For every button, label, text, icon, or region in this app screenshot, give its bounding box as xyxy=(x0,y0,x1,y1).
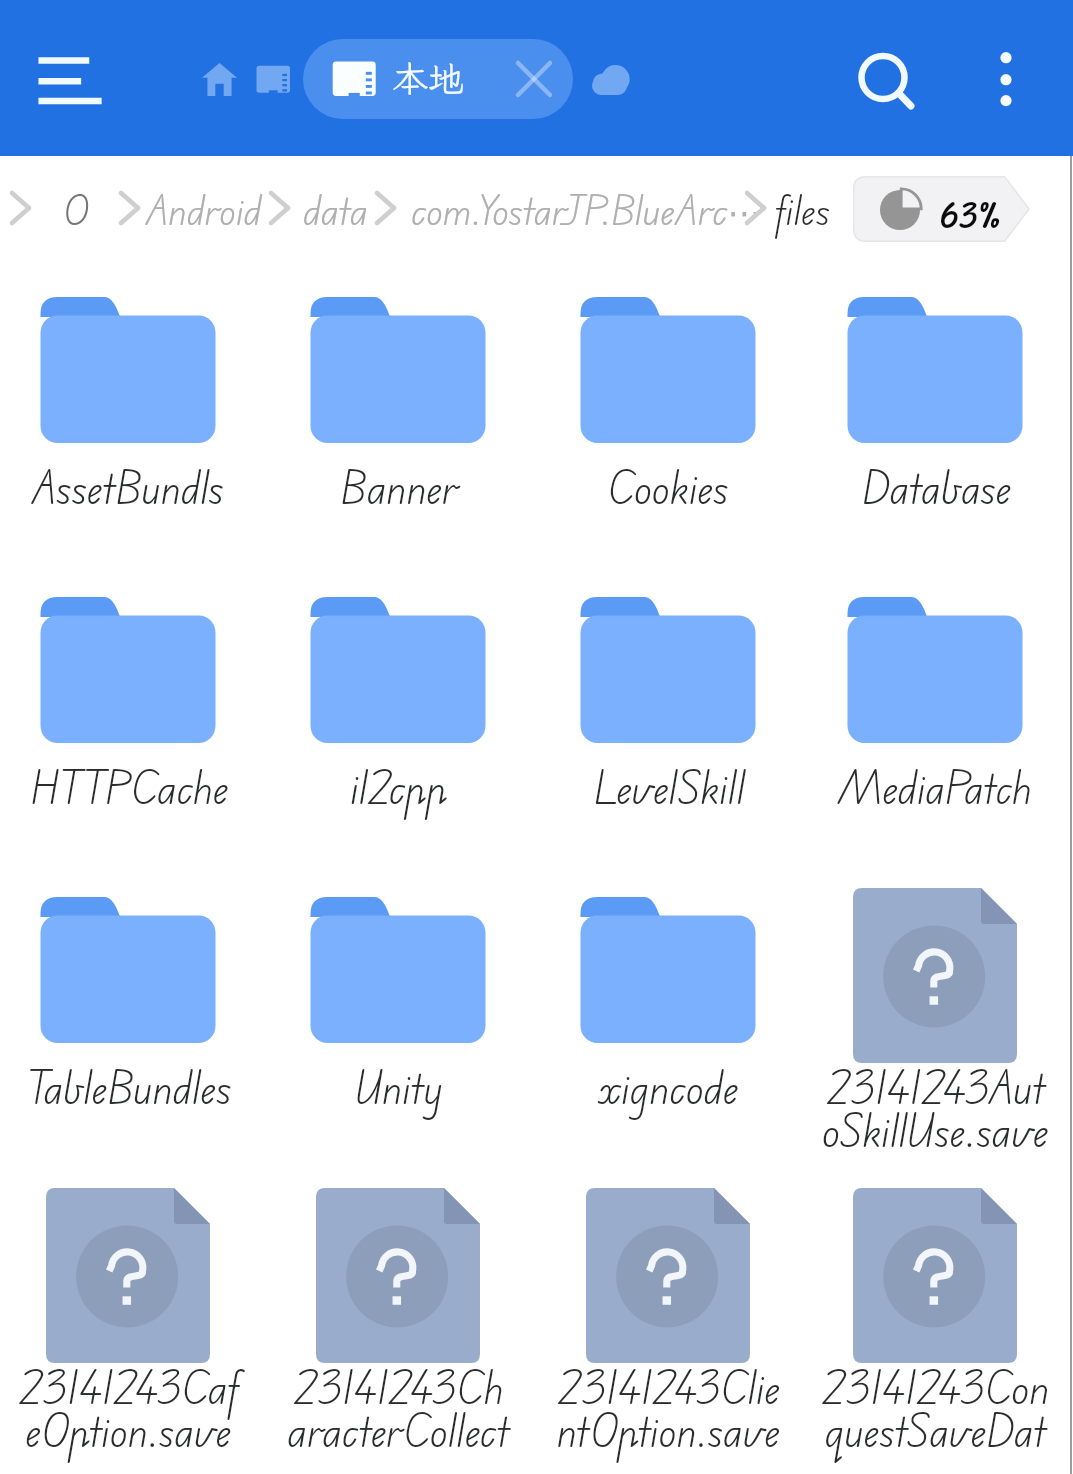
button[interactable]: Close tab xyxy=(506,51,562,107)
staticText: MediaPatch xyxy=(838,756,1032,820)
button[interactable]: 23141243CharacterCollect xyxy=(263,1188,533,1474)
button[interactable]: Banner xyxy=(263,288,533,588)
button[interactable]: Unity xyxy=(263,888,533,1188)
button[interactable]: Cookies xyxy=(533,288,803,588)
button[interactable]: MediaPatch xyxy=(803,588,1066,888)
staticText: 23141243AutoSkillUse.save xyxy=(820,1056,1050,1164)
staticText: 本地 xyxy=(392,55,465,102)
button[interactable]: HTTPCache xyxy=(0,588,263,888)
staticText: TableBundles xyxy=(25,1056,232,1120)
button[interactable]: Go to folder xyxy=(736,183,776,231)
button[interactable]: SD card xyxy=(246,52,300,106)
staticText: files xyxy=(776,181,831,240)
staticText: Banner xyxy=(339,456,458,520)
button[interactable]: Search xyxy=(840,35,928,123)
button[interactable]: Home xyxy=(190,51,249,108)
button[interactable]: Go to folder xyxy=(366,183,406,231)
button[interactable]: Go to folder xyxy=(110,183,150,231)
staticText: il2cpp xyxy=(350,756,447,820)
button[interactable]: data xyxy=(295,180,376,240)
button[interactable]: Android xyxy=(138,180,270,240)
button[interactable]: Go to folder xyxy=(1,183,41,231)
staticText: Cookies xyxy=(607,456,729,520)
staticText: 0 xyxy=(63,181,89,240)
button[interactable]: xigncode xyxy=(533,888,803,1188)
button[interactable]: LevelSkill xyxy=(533,588,803,888)
button[interactable]: Database xyxy=(803,288,1066,588)
button[interactable]: com.YostarJP.BlueArc⋯ xyxy=(403,180,770,240)
staticText: 63% xyxy=(938,193,1000,240)
staticText: HTTPCache xyxy=(29,756,228,820)
button[interactable]: 23141243AutoSkillUse.save xyxy=(803,888,1066,1188)
button[interactable]: 本地 xyxy=(303,39,573,119)
staticText: 23141243CafeOption.save xyxy=(13,1356,243,1464)
staticText: LevelSkill xyxy=(592,756,745,820)
staticText: Database xyxy=(860,456,1011,520)
button[interactable]: AssetBundls xyxy=(0,288,263,588)
button[interactable]: More options xyxy=(982,40,1030,118)
button[interactable]: Go to folder xyxy=(260,183,300,231)
button[interactable]: Cloud storage xyxy=(583,55,635,105)
button[interactable]: TableBundles xyxy=(0,888,263,1188)
button[interactable]: 23141243ConquestSaveDat xyxy=(803,1188,1066,1474)
button[interactable]: 23141243CafeOption.save xyxy=(0,1188,263,1474)
staticText: Unity xyxy=(354,1056,443,1120)
staticText: 23141243ClientOption.save xyxy=(553,1356,783,1464)
staticText: 23141243CharacterCollect xyxy=(283,1356,513,1464)
button[interactable]: il2cpp xyxy=(263,588,533,888)
button[interactable]: 23141243ClientOption.save xyxy=(533,1188,803,1474)
staticText: 23141243ConquestSaveDat xyxy=(820,1356,1050,1464)
staticText: data xyxy=(303,181,368,240)
button[interactable]: 0 xyxy=(55,180,97,240)
staticText: xigncode xyxy=(599,1056,738,1120)
staticText: Android xyxy=(146,181,262,240)
button[interactable]: 63% xyxy=(853,176,1030,242)
staticText: AssetBundls xyxy=(32,456,224,520)
staticText: com.YostarJP.BlueArc⋯ xyxy=(411,181,762,240)
button[interactable]: files xyxy=(768,180,839,240)
button[interactable]: Menu xyxy=(28,44,112,116)
